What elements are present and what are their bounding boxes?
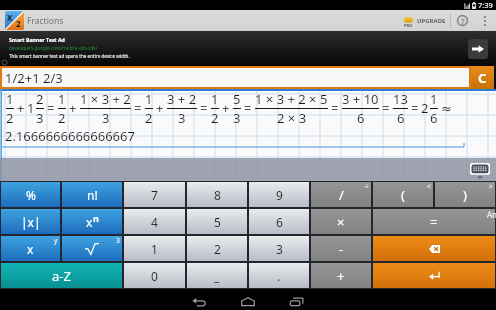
staticText: -: [339, 240, 344, 258]
staticText: =: [430, 213, 438, 231]
button[interactable]: (: [373, 182, 433, 207]
staticText: 1: [211, 90, 219, 108]
staticText: C: [478, 69, 487, 87]
staticText: Ans: [487, 209, 496, 220]
button[interactable]: .: [249, 263, 309, 288]
staticText: 3: [276, 241, 283, 257]
staticText: 2: [36, 90, 44, 108]
staticText: ): [463, 186, 467, 204]
staticText: +: [69, 99, 77, 117]
staticText: 6: [430, 109, 438, 127]
staticText: X: [7, 12, 13, 23]
staticText: n!: [87, 187, 98, 203]
staticText: a-Z: [52, 267, 71, 285]
staticText: x: [27, 241, 34, 257]
button[interactable]: 6: [249, 209, 309, 234]
button[interactable]: =: [373, 209, 495, 234]
button[interactable]: 1: [124, 236, 185, 261]
staticText: Fractions: [27, 15, 64, 27]
staticText: =: [411, 99, 419, 117]
button[interactable]: |x|: [1, 209, 60, 234]
button[interactable]: %: [1, 182, 60, 207]
button[interactable]: 8: [187, 182, 247, 207]
staticText: y: [54, 236, 58, 245]
staticText: n: [93, 212, 99, 224]
button[interactable]: Recents: [284, 292, 309, 310]
staticText: =: [134, 99, 142, 117]
staticText: 2: [145, 109, 153, 127]
staticText: PRO: [404, 23, 413, 28]
staticText: .: [277, 268, 281, 284]
staticText: This smart banner test ad spans the enti…: [9, 53, 130, 59]
button[interactable]: 9: [249, 182, 309, 207]
button[interactable]: 5: [187, 209, 247, 234]
staticText: ≈: [441, 101, 452, 116]
button[interactable]: 3: [249, 236, 309, 261]
staticText: 7:39: [478, 0, 493, 10]
staticText: ÷: [365, 182, 369, 191]
staticText: 3: [178, 109, 186, 127]
staticText: 0: [151, 268, 158, 284]
staticText: /: [339, 186, 344, 204]
staticText: 5: [233, 90, 241, 108]
staticText: ×: [337, 213, 345, 231]
staticText: 6: [357, 109, 365, 127]
staticText: =: [200, 99, 208, 117]
button[interactable]: _: [187, 263, 247, 288]
button[interactable]: -: [311, 236, 371, 261]
staticText: ?: [461, 16, 465, 26]
button[interactable]: 0: [124, 263, 185, 288]
button[interactable]: n!: [62, 182, 122, 207]
staticText: 2 × 3: [277, 109, 307, 127]
staticText: =: [244, 99, 252, 117]
staticText: 6: [397, 109, 405, 127]
staticText: +: [337, 267, 345, 285]
button[interactable]: Show keyboard: [470, 163, 490, 179]
staticText: =: [47, 99, 55, 117]
staticText: 7: [151, 187, 158, 203]
staticText: 1: [430, 90, 438, 108]
staticText: 2: [6, 109, 14, 127]
button[interactable]: Enter: [373, 263, 495, 288]
staticText: x: [86, 214, 93, 230]
button[interactable]: Home: [235, 292, 260, 310]
staticText: 2.1666666666666667: [5, 127, 135, 145]
staticText: developers.google.com/mobile-ads-sdk/: [9, 45, 98, 51]
staticText: 1/2+1 2/3: [5, 69, 63, 87]
button[interactable]: Open ad: [468, 39, 488, 59]
staticText: 1: [27, 99, 35, 117]
staticText: 13: [393, 90, 408, 108]
button[interactable]: /: [311, 182, 371, 207]
button[interactable]: Back: [186, 292, 211, 310]
button[interactable]: 3: [62, 236, 122, 261]
button[interactable]: a-Z: [1, 263, 122, 288]
staticText: _: [214, 268, 220, 284]
button[interactable]: C: [471, 66, 494, 89]
button[interactable]: PRO: [398, 10, 450, 31]
staticText: 2: [421, 99, 429, 117]
button[interactable]: +: [311, 263, 371, 288]
staticText: |x|: [21, 214, 41, 230]
staticText: 2: [16, 18, 21, 29]
button[interactable]: x: [1, 236, 60, 261]
button[interactable]: x: [62, 209, 122, 234]
button[interactable]: Smart Banner Test Ad: [0, 31, 496, 66]
button[interactable]: More options: [474, 10, 496, 31]
staticText: 1: [6, 90, 14, 108]
staticText: 3 + 2: [167, 90, 197, 108]
button[interactable]: Help: [451, 10, 474, 31]
staticText: 8: [214, 187, 221, 203]
staticText: 5: [214, 214, 221, 230]
button[interactable]: 4: [124, 209, 185, 234]
button[interactable]: Backspace: [373, 236, 495, 261]
staticText: 1: [145, 90, 153, 108]
staticText: 3: [102, 109, 110, 127]
staticText: 9: [276, 187, 283, 203]
button[interactable]: ×: [311, 209, 371, 234]
button[interactable]: ): [435, 182, 495, 207]
staticText: Smart Banner Test Ad: [9, 36, 65, 43]
button[interactable]: 1/2+1 2/3: [2, 68, 469, 87]
button[interactable]: 7: [124, 182, 185, 207]
staticText: 2: [214, 241, 221, 257]
button[interactable]: 2: [187, 236, 247, 261]
